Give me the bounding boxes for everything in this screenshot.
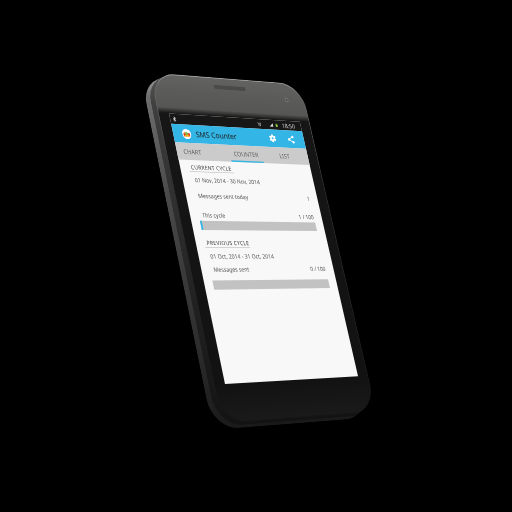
staticText: 01 Oct, 2014 - 31 Oct, 2014 — [209, 252, 275, 260]
button[interactable]: This cycle — [201, 211, 315, 221]
staticText: COUNTER — [233, 149, 259, 159]
staticText: Messages sent today — [197, 192, 249, 201]
button[interactable]: Share — [279, 130, 302, 149]
staticText: CURRENT CYCLE — [190, 163, 232, 173]
staticText: 0 / 100 — [309, 265, 326, 273]
staticText: 18:50 — [281, 121, 296, 130]
staticText: 1 — [306, 195, 310, 202]
button[interactable]: LIST — [270, 147, 299, 164]
staticText: Messages sent — [213, 265, 250, 273]
button[interactable]: Messages sent — [213, 265, 326, 273]
button[interactable]: Settings — [261, 129, 284, 148]
button[interactable]: Messages sent today — [197, 192, 310, 202]
staticText: PREVIOUS CYCLE — [206, 239, 250, 247]
button[interactable]: COUNTER — [218, 144, 273, 163]
staticText: 01 Nov, 2014 - 30 Nov, 2014 — [194, 176, 260, 186]
staticText: 1 / 100 — [298, 213, 315, 221]
staticText: This cycle — [201, 211, 226, 219]
staticText: LIST — [278, 152, 291, 160]
button[interactable]: CHART — [163, 142, 221, 161]
staticText: CHART — [182, 147, 202, 157]
staticText: SMS Counter — [195, 129, 238, 142]
